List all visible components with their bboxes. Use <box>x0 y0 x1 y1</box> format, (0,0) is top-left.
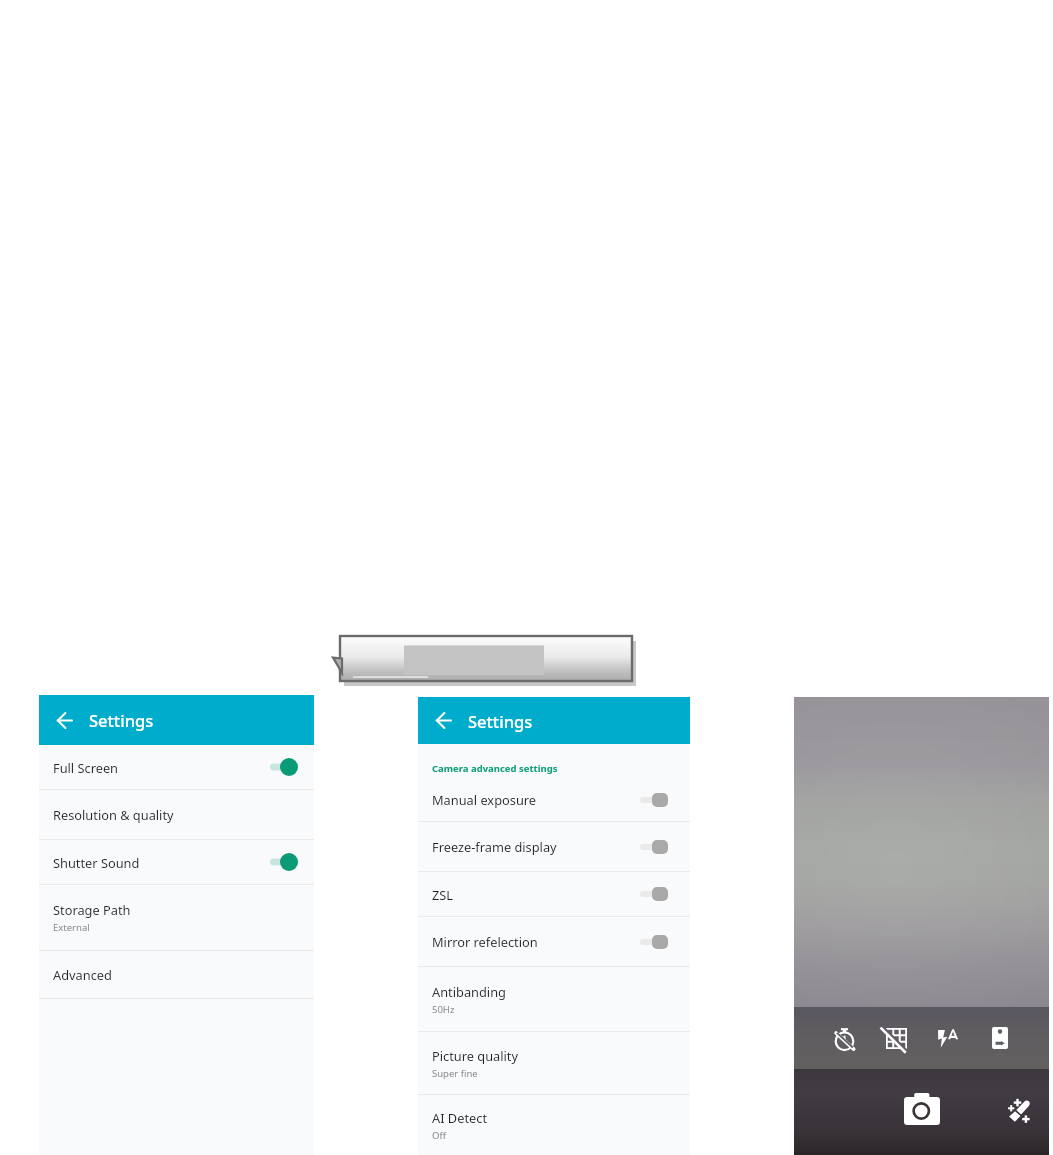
staticText: Full Screen <box>53 759 119 776</box>
staticText: Picture quality <box>432 1047 518 1064</box>
button[interactable]: Freeze-frame display <box>418 822 690 871</box>
staticText: 50Hz <box>432 1003 455 1016</box>
button[interactable]: Storage Path <box>39 885 314 950</box>
staticText: External <box>53 921 90 934</box>
button[interactable]: Back <box>418 697 468 744</box>
staticText: Resolution & quality <box>53 806 174 823</box>
button[interactable]: Flash <box>922 1014 974 1062</box>
staticText: ZSL <box>432 886 454 903</box>
staticText: Off <box>432 1129 446 1142</box>
button[interactable]: Advanced <box>39 951 314 998</box>
button[interactable]: ZSL <box>418 872 690 916</box>
staticText: Settings <box>89 709 154 731</box>
staticText: Manual exposure <box>432 791 537 808</box>
button[interactable]: Grid <box>870 1014 922 1062</box>
button[interactable]: Shutter <box>902 1089 942 1129</box>
button[interactable]: Mirror refelection <box>418 917 690 966</box>
staticText: Advanced <box>53 966 112 983</box>
button[interactable]: Manual exposure <box>418 778 690 821</box>
staticText: Super fine <box>432 1067 478 1080</box>
staticText: Mirror refelection <box>432 933 538 950</box>
staticText: Storage Path <box>53 901 131 918</box>
button[interactable]: AI Detect <box>418 1095 690 1155</box>
button[interactable]: Timer <box>818 1014 870 1062</box>
button[interactable]: Resolution & quality <box>39 790 314 839</box>
staticText: Camera advanced settings <box>432 762 558 775</box>
button[interactable]: Shutter Sound <box>39 840 314 884</box>
staticText: Shutter Sound <box>53 854 140 871</box>
button[interactable]: Picture quality <box>418 1032 690 1094</box>
button[interactable]: Back <box>39 695 89 745</box>
staticText: Freeze-frame display <box>432 838 557 855</box>
staticText: Antibanding <box>432 983 506 1000</box>
button[interactable]: Storage <box>974 1014 1026 1062</box>
button[interactable]: Antibanding <box>418 967 690 1031</box>
staticText: Settings <box>468 710 533 732</box>
button[interactable]: Full Screen <box>39 745 314 789</box>
staticText: AI Detect <box>432 1109 488 1126</box>
button[interactable]: Beauty <box>1002 1094 1036 1128</box>
